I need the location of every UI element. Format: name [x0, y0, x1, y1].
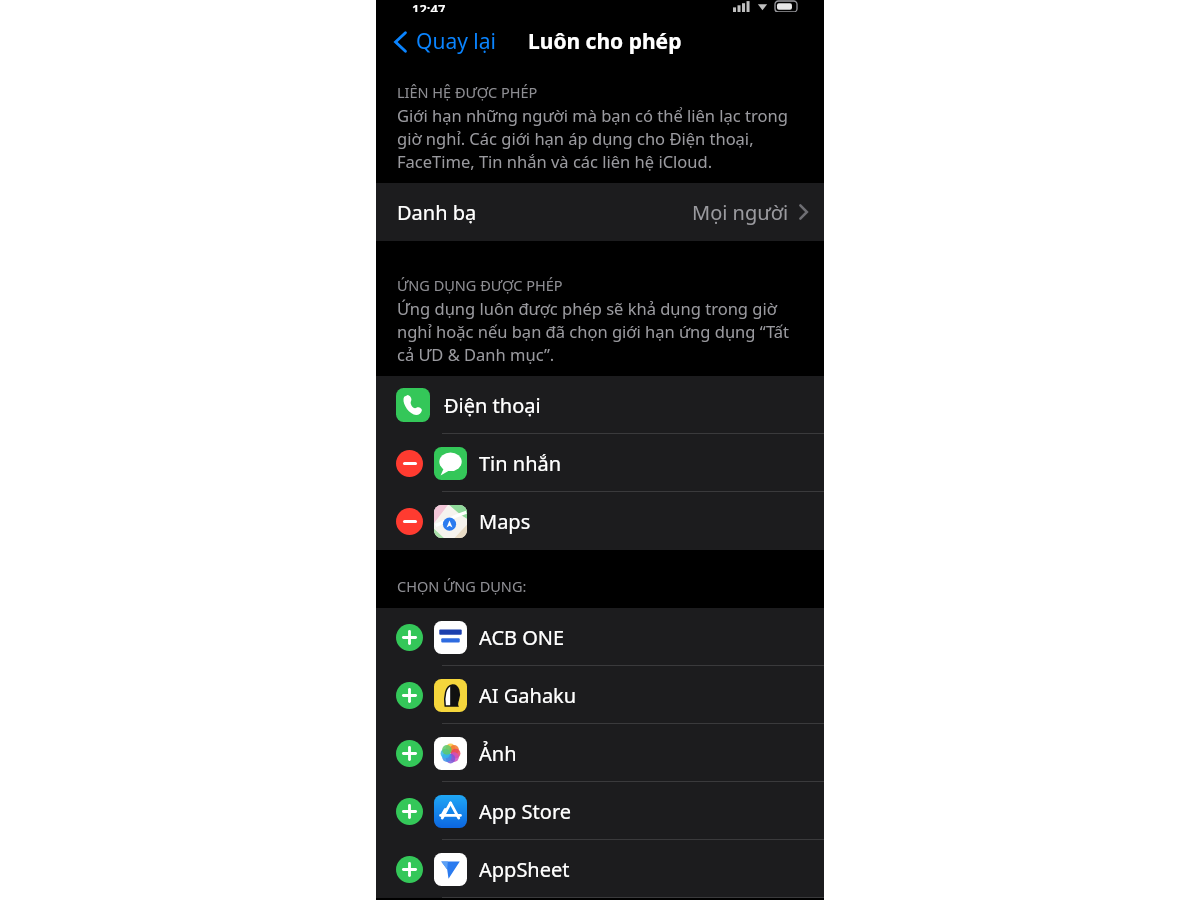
- other: Add Ảnh: [396, 740, 423, 767]
- staticText: 12:47: [412, 0, 446, 12]
- button[interactable]: Add Ảnh: [376, 724, 824, 782]
- button[interactable]: Remove Tin nhắn: [376, 434, 824, 492]
- other: Remove Maps: [396, 508, 423, 535]
- staticText: App Store: [479, 798, 572, 825]
- staticText: Ảnh: [479, 740, 517, 767]
- other: Add ACB ONE: [396, 624, 423, 651]
- staticText: Danh bạ: [397, 199, 477, 226]
- other: Add App Store: [396, 798, 423, 825]
- button[interactable]: Remove Maps: [376, 492, 824, 550]
- button[interactable]: Add AppSheet: [376, 840, 824, 898]
- button[interactable]: Add AI Gahaku: [376, 666, 824, 724]
- staticText: Quay lại: [416, 27, 496, 56]
- staticText: Điện thoại: [444, 392, 541, 419]
- staticText: Ứng dụng luôn được phép sẽ khả dụng tron…: [397, 297, 804, 366]
- button[interactable]: Add ACB ONE: [376, 608, 824, 666]
- staticText: Luôn cho phép: [528, 27, 682, 56]
- staticText: Tin nhắn: [479, 450, 562, 477]
- staticText: LIÊN HỆ ĐƯỢC PHÉP: [397, 82, 538, 102]
- button[interactable]: Quay lại: [388, 21, 502, 62]
- button[interactable]: Danh bạ: [376, 183, 824, 241]
- staticText: Maps: [479, 508, 531, 535]
- staticText: Giới hạn những người mà bạn có thể liên …: [397, 104, 804, 173]
- staticText: Mọi người: [692, 199, 789, 226]
- button[interactable]: Add App Store: [376, 782, 824, 840]
- other: Remove Tin nhắn: [396, 450, 423, 477]
- staticText: ỨNG DỤNG ĐƯỢC PHÉP: [397, 275, 563, 295]
- other: Add AppSheet: [396, 856, 423, 883]
- staticText: AppSheet: [479, 856, 570, 883]
- staticText: AI Gahaku: [479, 682, 577, 709]
- other: Add AI Gahaku: [396, 682, 423, 709]
- button[interactable]: Điện thoại: [376, 376, 824, 434]
- staticText: CHỌN ỨNG DỤNG:: [397, 576, 527, 596]
- staticText: ACB ONE: [479, 624, 565, 651]
